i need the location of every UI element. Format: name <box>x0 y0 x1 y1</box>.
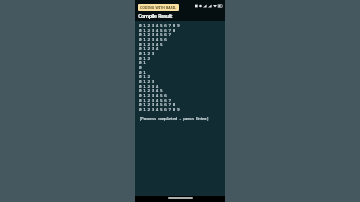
staticText: 0 1 2 3 4 5 6 7 8 9 <box>139 22 180 28</box>
staticText: 0 <box>139 64 142 70</box>
staticText: 0 1 2 3 4 5 <box>139 41 163 47</box>
staticText: 0 1 2 <box>139 55 150 61</box>
other: Mobile signal SIM 1 <box>203 4 207 8</box>
staticText: Result <box>158 12 172 20</box>
staticText: 0 1 2 3 <box>139 50 154 56</box>
staticText: 0 1 2 3 4 5 <box>139 87 163 93</box>
staticText: 0 1 2 3 4 <box>139 45 158 51</box>
staticText: 0 1 2 3 4 5 6 7 8 <box>139 101 175 107</box>
staticText: [Process completed - press Enter] <box>139 115 209 121</box>
staticText: 0 1 2 3 4 5 6 7 8 <box>139 27 175 33</box>
staticText: 0 1 <box>139 59 146 65</box>
other: Battery <box>218 4 223 8</box>
button[interactable]: CODING WITH BASIL <box>138 4 179 11</box>
other: Notification <box>195 4 198 8</box>
staticText: 0 1 2 3 4 <box>139 83 158 89</box>
staticText: 0 1 2 3 4 5 6 7 <box>139 97 171 103</box>
staticText: Compile <box>138 12 157 20</box>
button[interactable]: Home <box>168 197 193 199</box>
staticText: 0 1 2 3 <box>139 78 154 84</box>
staticText: 0 1 <box>139 69 146 75</box>
staticText: 0 1 2 3 4 5 6 7 8 9 <box>139 106 180 112</box>
other: Alarm <box>199 4 202 8</box>
other: Wi-Fi <box>213 4 217 8</box>
staticText: 0 1 2 3 4 5 6 7 <box>139 31 171 37</box>
button[interactable]: Compile <box>138 12 172 20</box>
other: Mobile signal SIM 2 <box>208 4 212 8</box>
staticText: 0 1 2 <box>139 73 150 79</box>
staticText: CODING WITH BASIL <box>140 5 177 10</box>
staticText: 0 1 2 3 4 5 6 <box>139 92 167 98</box>
staticText: 0 1 2 3 4 5 6 <box>139 36 167 42</box>
